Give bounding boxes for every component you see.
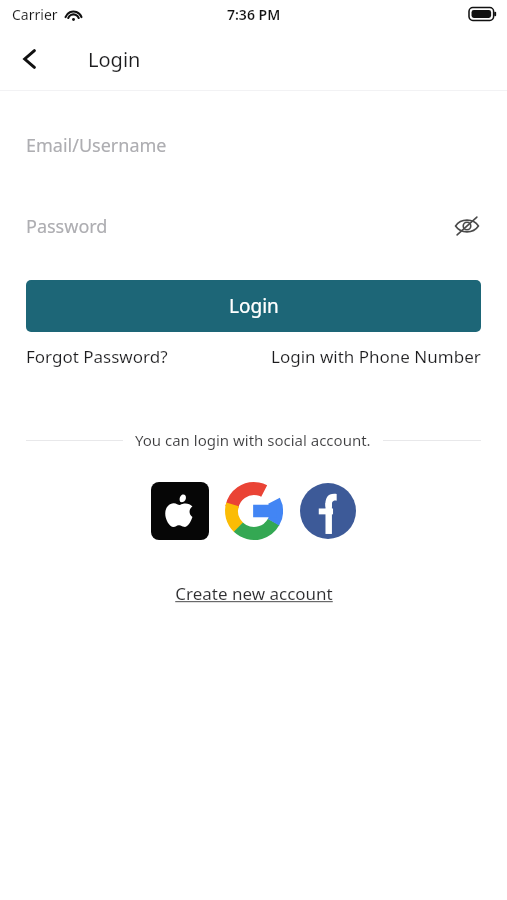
button[interactable]: Sign in with Facebook — [299, 482, 357, 540]
button[interactable]: Sign in with Apple — [151, 482, 209, 540]
button[interactable]: Back — [10, 39, 50, 79]
staticText: You can login with social account. — [135, 430, 371, 450]
button[interactable]: Login — [26, 280, 481, 332]
staticText: 7:36 PM — [227, 5, 281, 24]
button[interactable]: Create new account — [175, 582, 333, 605]
staticText: Login with Phone Number — [271, 345, 481, 368]
button[interactable]: Email/Username — [0, 125, 507, 165]
button[interactable]: Show password — [447, 206, 487, 246]
staticText: Password — [26, 214, 108, 239]
button[interactable]: Forgot Password? — [26, 345, 168, 368]
staticText: Email/Username — [26, 133, 167, 158]
button[interactable]: Sign in with Google — [225, 482, 283, 540]
staticText: Carrier — [12, 5, 58, 24]
staticText: Login — [229, 293, 279, 319]
staticText: Login — [88, 46, 141, 73]
staticText: Create new account — [175, 582, 333, 605]
button[interactable]: Login with Phone Number — [271, 345, 481, 368]
staticText: Forgot Password? — [26, 345, 168, 368]
button[interactable]: Password — [0, 206, 507, 246]
